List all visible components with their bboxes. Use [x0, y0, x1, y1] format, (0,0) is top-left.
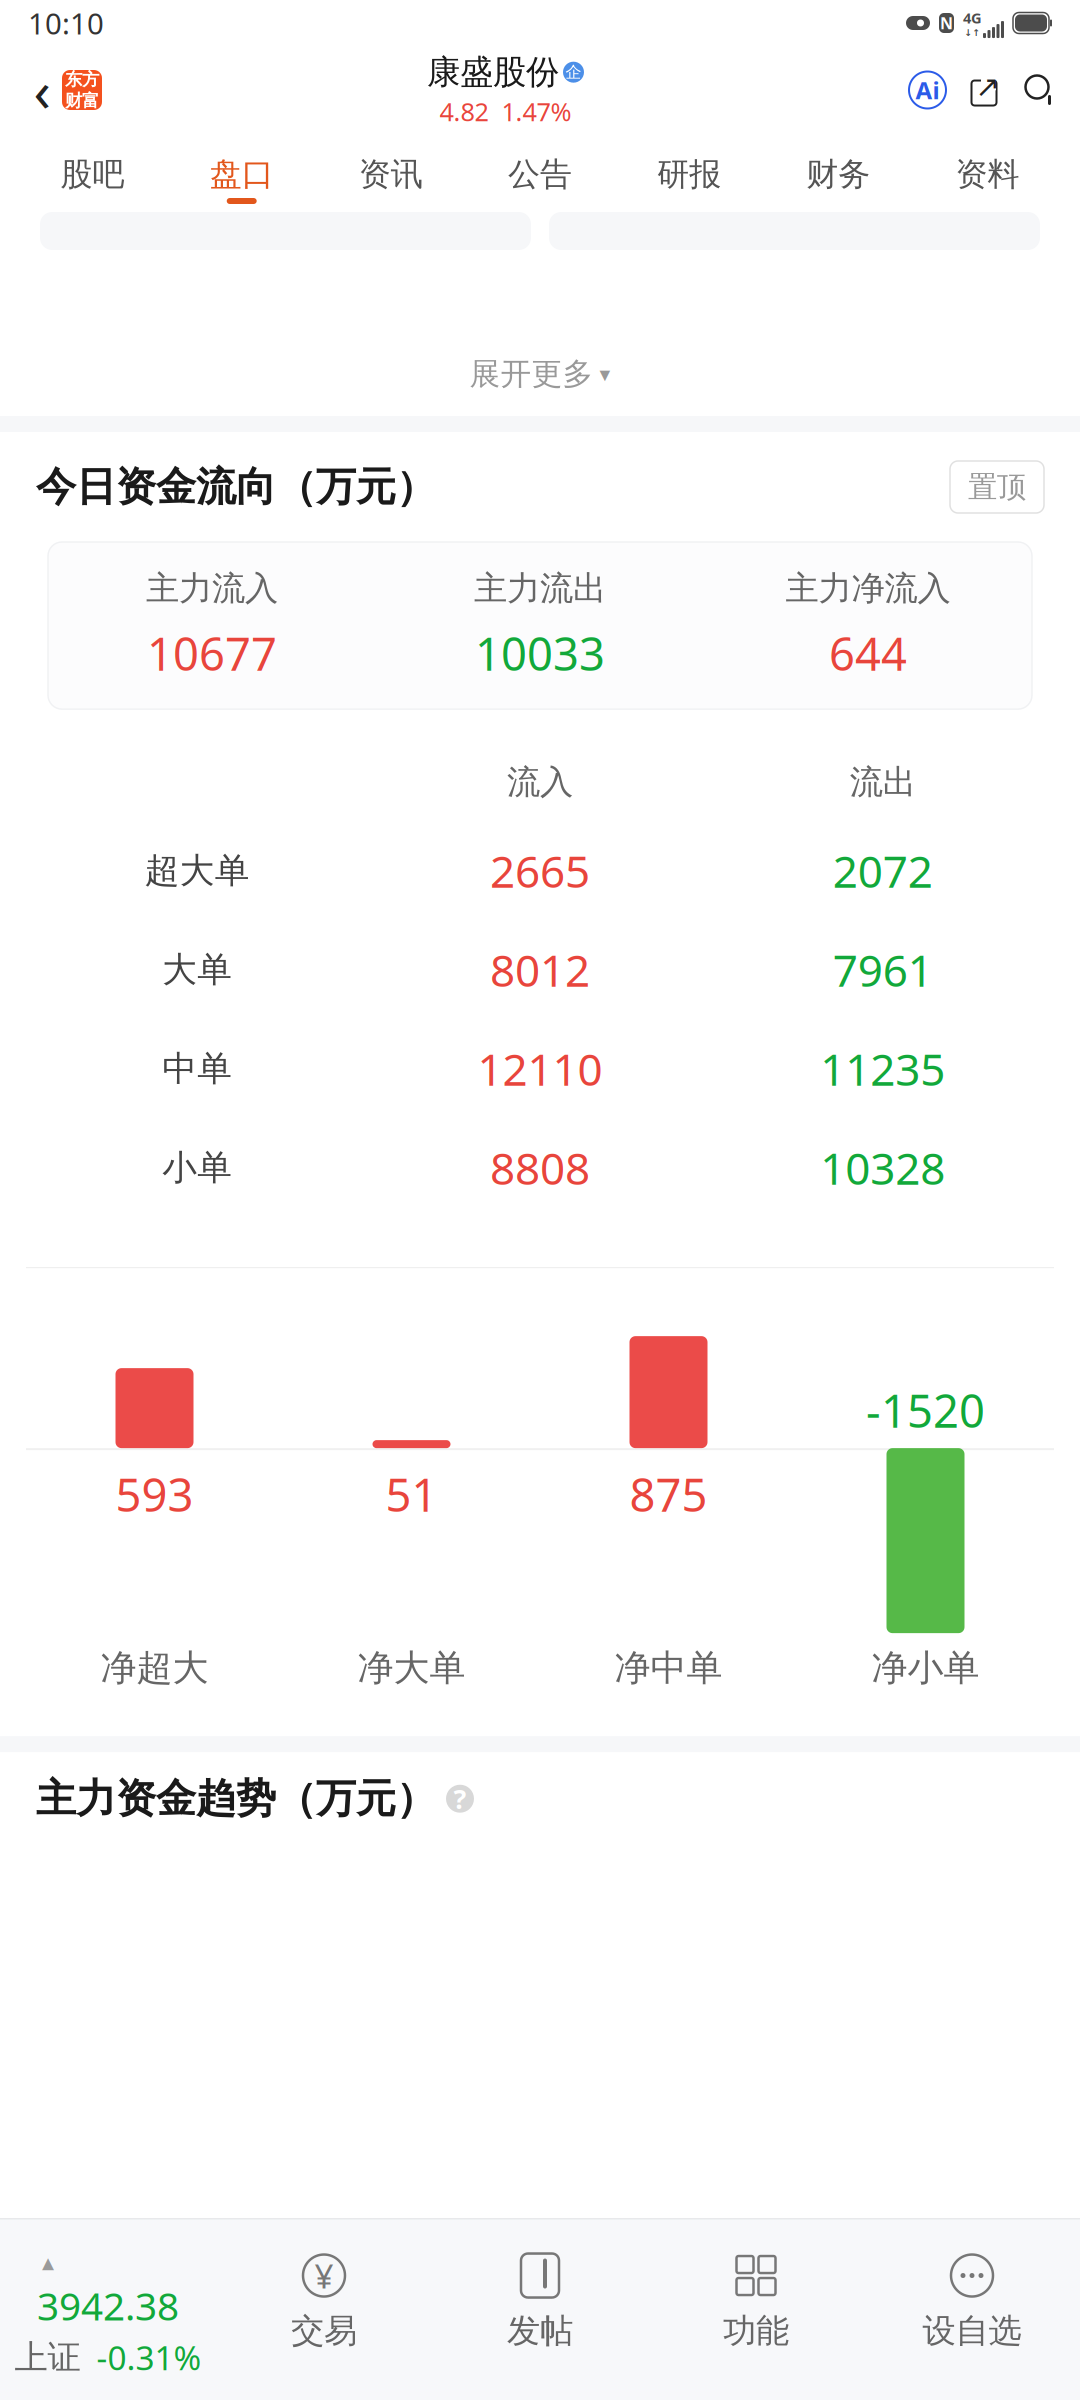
- staticText: ?: [453, 1781, 466, 1816]
- staticText: 593: [115, 1464, 193, 1524]
- staticText: 12110: [477, 1039, 602, 1098]
- staticText: 康盛股份: [427, 52, 559, 93]
- staticText: 研报: [657, 155, 721, 194]
- staticText: 大单: [162, 948, 232, 991]
- staticText: 11235: [820, 1039, 945, 1098]
- staticText: 设自选: [922, 2310, 1021, 2351]
- staticText: ▾: [599, 362, 610, 386]
- button[interactable]: 发帖: [432, 2250, 648, 2377]
- button[interactable]: 研报: [615, 134, 764, 212]
- staticText: 中单: [162, 1047, 232, 1090]
- staticText: 功能: [723, 2310, 789, 2351]
- staticText: 今日资金流向（万元）: [36, 462, 436, 511]
- button[interactable]: 资讯: [316, 134, 465, 212]
- staticText: 2665: [490, 841, 590, 900]
- staticText: 10:10: [28, 3, 104, 42]
- staticText: 主力净流入: [785, 568, 950, 609]
- button[interactable]: 搜索: [1022, 72, 1058, 108]
- staticText: 875: [629, 1464, 707, 1524]
- staticText: 财富: [65, 90, 99, 111]
- button[interactable]: 盘口: [167, 134, 316, 212]
- staticText: 展开更多: [469, 355, 593, 393]
- button[interactable]: 设自选: [864, 2250, 1080, 2377]
- staticText: 置顶: [968, 469, 1026, 505]
- staticText: 净超大: [100, 1646, 208, 1690]
- button[interactable]: 资料: [913, 134, 1062, 212]
- staticText: 2072: [833, 841, 933, 900]
- button[interactable]: 展开更多: [0, 332, 1080, 416]
- staticText: 10677: [147, 623, 277, 683]
- button[interactable]: 置顶: [950, 461, 1044, 513]
- staticText: 10033: [475, 623, 605, 683]
- staticText: 8808: [490, 1138, 590, 1197]
- staticText: 7961: [833, 940, 933, 999]
- staticText: ▴: [42, 2249, 54, 2276]
- staticText: -0.31%: [96, 2335, 201, 2379]
- staticText: 1.47%: [501, 95, 571, 128]
- staticText: 主力流出: [474, 568, 606, 609]
- staticText: 净大单: [357, 1646, 465, 1690]
- button[interactable]: ¥: [216, 2250, 432, 2377]
- staticText: 4G: [963, 8, 982, 27]
- button[interactable]: 股吧: [18, 134, 167, 212]
- staticText: ‹: [33, 53, 50, 127]
- staticText: 51: [385, 1464, 437, 1524]
- button[interactable]: 财务: [764, 134, 913, 212]
- staticText: 资讯: [359, 155, 423, 194]
- staticText: ¥: [314, 2253, 333, 2298]
- staticText: 小单: [162, 1146, 232, 1189]
- staticText: ↓↑: [964, 27, 980, 38]
- staticText: 10328: [820, 1138, 945, 1197]
- staticText: 流出: [850, 762, 916, 803]
- staticText: N: [940, 12, 953, 34]
- button[interactable]: 公告: [465, 134, 614, 212]
- button[interactable]: AI 助手: [909, 71, 946, 108]
- staticText: 交易: [291, 2310, 357, 2351]
- staticText: 财务: [806, 155, 870, 194]
- staticText: 东方: [65, 69, 99, 90]
- staticText: 净中单: [614, 1646, 722, 1690]
- staticText: 4.82: [439, 95, 488, 128]
- staticText: 发帖: [507, 2310, 573, 2351]
- staticText: ↗: [975, 70, 1000, 103]
- staticText: 股吧: [61, 155, 125, 194]
- staticText: 净小单: [871, 1646, 979, 1690]
- staticText: 644: [829, 623, 907, 683]
- staticText: 盘口: [210, 155, 274, 194]
- staticText: 公告: [508, 155, 572, 194]
- staticText: 3942.38: [37, 2280, 179, 2331]
- button[interactable]: 上证指数 3942.38: [0, 2249, 216, 2379]
- staticText: 资料: [955, 155, 1019, 194]
- button[interactable]: 返回: [22, 60, 62, 120]
- staticText: 企: [565, 62, 581, 82]
- button[interactable]: 东方财富: [62, 70, 102, 110]
- staticText: -1520: [866, 1380, 985, 1440]
- staticText: 上证: [14, 2337, 80, 2378]
- staticText: 超大单: [145, 849, 250, 892]
- button[interactable]: 分享: [966, 72, 1002, 108]
- staticText: 主力流入: [146, 568, 278, 609]
- staticText: 主力资金趋势（万元）: [36, 1774, 436, 1823]
- staticText: 流入: [507, 762, 573, 803]
- staticText: 8012: [490, 940, 590, 999]
- staticText: Ai: [915, 74, 939, 106]
- button[interactable]: 功能: [648, 2250, 864, 2377]
